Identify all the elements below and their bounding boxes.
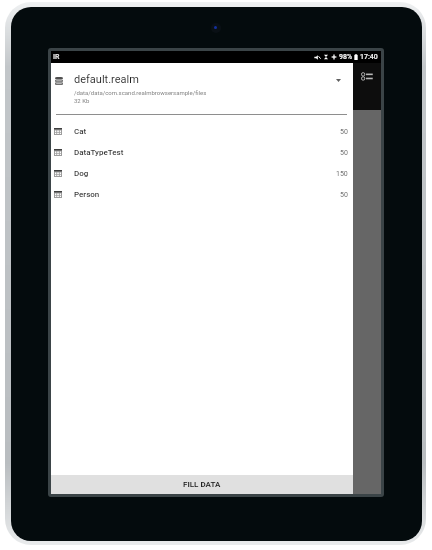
staticText: 98% <box>339 53 353 61</box>
button[interactable]: Tables <box>353 63 381 110</box>
staticText: Dog <box>74 169 336 178</box>
staticText: 50 <box>340 128 348 136</box>
staticText: /data/data/com.scand.realmbrowsersample/… <box>74 89 207 96</box>
button[interactable]: Dog <box>51 163 353 184</box>
button[interactable]: FILL DATA <box>51 475 353 494</box>
staticText: IR <box>53 53 60 61</box>
button[interactable]: Expand <box>323 63 353 97</box>
staticText: 150 <box>336 170 348 178</box>
staticText: Person <box>74 190 340 199</box>
staticText: 32 Kb <box>74 97 90 104</box>
staticText: 17:40 <box>360 53 378 61</box>
staticText: 50 <box>340 149 348 157</box>
button[interactable]: Person <box>51 184 353 205</box>
staticText: DataTypeTest <box>74 148 340 157</box>
button[interactable]: default.realm <box>51 63 353 114</box>
staticText: default.realm <box>74 73 139 86</box>
button[interactable]: DataTypeTest <box>51 142 353 163</box>
button[interactable]: Cat <box>51 121 353 142</box>
staticText: Cat <box>74 127 340 136</box>
staticText: 50 <box>340 191 348 199</box>
staticText: FILL DATA <box>183 480 221 489</box>
